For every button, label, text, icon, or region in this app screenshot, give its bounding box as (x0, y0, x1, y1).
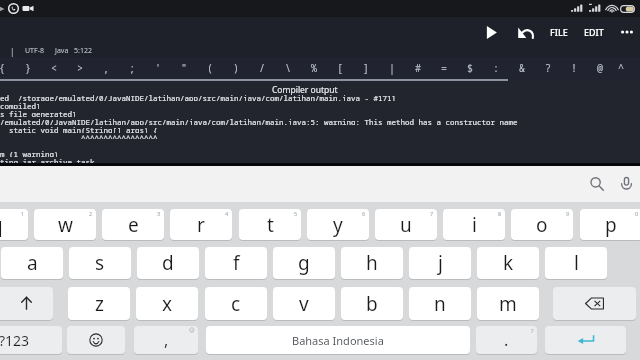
button[interactable]: # (405, 57, 431, 79)
staticText: m (499, 291, 517, 317)
button[interactable]: & (509, 57, 535, 79)
button[interactable]: v (273, 287, 335, 320)
button[interactable]: . (476, 326, 537, 354)
button[interactable]: Bahasa Indonesia (206, 326, 470, 354)
button[interactable]: } (15, 57, 41, 79)
staticText: z (95, 291, 104, 317)
staticText: compiled] (0, 101, 41, 109)
button[interactable]: d (137, 247, 199, 279)
button[interactable]: Undo (508, 17, 543, 47)
button[interactable]: z (68, 287, 130, 320)
staticText: ☺ (189, 327, 195, 333)
staticText: ! (571, 61, 577, 75)
button[interactable]: h (341, 247, 403, 279)
button[interactable]: k (477, 247, 539, 279)
button[interactable]: [ (327, 57, 353, 79)
staticText: > (77, 61, 83, 75)
staticText: . (504, 329, 509, 351)
staticText: /emulated/0/JavaNIDE/latihan/app/src/mai… (0, 117, 518, 125)
button[interactable]: Run (475, 17, 508, 47)
button[interactable]: ( (197, 57, 223, 79)
staticText: , (103, 61, 109, 75)
button[interactable]: a (1, 247, 63, 279)
staticText: , (164, 329, 169, 351)
button[interactable]: g (273, 247, 335, 279)
button[interactable]: Enter (545, 326, 626, 354)
staticText: FILE (550, 26, 568, 38)
button[interactable]: e (102, 209, 164, 240)
staticText: | (10, 46, 15, 57)
button[interactable]: EDIT (576, 17, 612, 47)
staticText: Bahasa Indonesia (292, 333, 384, 348)
button[interactable]: x (136, 287, 198, 320)
button[interactable]: Backspace (553, 287, 636, 320)
staticText: 7 (430, 210, 434, 217)
staticText: d (162, 250, 174, 276)
staticText: 6 (362, 210, 366, 217)
button[interactable]: ?123 (0, 326, 62, 354)
staticText: s (95, 250, 105, 276)
button[interactable]: Search (582, 169, 611, 199)
button[interactable]: s (69, 247, 131, 279)
staticText: r (197, 212, 205, 238)
button[interactable]: ? (535, 57, 561, 79)
staticText: a (27, 250, 38, 276)
button[interactable]: ] (353, 57, 379, 79)
button[interactable]: > (67, 57, 93, 79)
button[interactable]: p (580, 209, 640, 240)
button[interactable]: \ (275, 57, 301, 79)
staticText: \ (285, 61, 291, 75)
staticText: k (503, 250, 514, 276)
staticText: # (415, 61, 421, 75)
button[interactable]: , (93, 57, 119, 79)
button[interactable]: $ (457, 57, 483, 79)
button[interactable]: c (205, 287, 267, 320)
button[interactable]: i (443, 209, 505, 240)
staticText: UTF-8 (25, 46, 44, 56)
staticText: e (128, 212, 139, 238)
button[interactable]: ! (561, 57, 587, 79)
staticText: 3 (157, 210, 161, 217)
staticText: p (605, 212, 617, 238)
button[interactable]: / (249, 57, 275, 79)
button[interactable]: l (545, 247, 607, 279)
button[interactable]: ; (119, 57, 145, 79)
button[interactable]: Voice input (612, 169, 640, 199)
button[interactable]: Emoji (67, 326, 125, 354)
staticText: ? (531, 327, 534, 334)
button[interactable]: y (307, 209, 369, 240)
button[interactable]: r (170, 209, 232, 240)
button[interactable]: w (34, 209, 96, 240)
button[interactable]: = (431, 57, 457, 79)
staticText: $ (467, 61, 473, 75)
button[interactable]: { (0, 57, 15, 79)
button[interactable]: % (301, 57, 327, 79)
button[interactable]: b (341, 287, 403, 320)
staticText: ' (155, 61, 161, 75)
button[interactable]: , (134, 326, 198, 354)
button[interactable]: FILE (541, 17, 577, 47)
button[interactable]: t (239, 209, 301, 240)
button[interactable]: ^ (613, 57, 629, 79)
staticText: t (267, 212, 274, 238)
button[interactable]: u (375, 209, 437, 240)
button[interactable]: ) (223, 57, 249, 79)
button[interactable]: f (205, 247, 267, 279)
button[interactable]: @ (587, 57, 613, 79)
button[interactable]: o (511, 209, 573, 240)
staticText: | (389, 61, 395, 75)
button[interactable]: | (379, 57, 405, 79)
button[interactable]: ' (145, 57, 171, 79)
button[interactable]: m (477, 287, 539, 320)
button[interactable]: j (409, 247, 471, 279)
button[interactable]: : (483, 57, 509, 79)
button[interactable]: Shift (0, 287, 53, 320)
button[interactable]: More options (614, 17, 640, 47)
button[interactable]: " (171, 57, 197, 79)
staticText: % (311, 61, 317, 75)
staticText: b (366, 291, 378, 317)
button[interactable]: q (0, 209, 28, 240)
button[interactable]: < (41, 57, 67, 79)
button[interactable]: n (409, 287, 471, 320)
staticText: s file generated] (0, 109, 77, 117)
